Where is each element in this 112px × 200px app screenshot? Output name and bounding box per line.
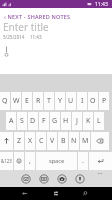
button[interactable]: L <box>94 112 104 130</box>
button[interactable]: Search <box>77 187 93 200</box>
button[interactable]: D <box>28 112 38 130</box>
staticText: M <box>82 136 89 146</box>
button[interactable]: X <box>25 132 35 150</box>
staticText: D <box>30 116 36 126</box>
button[interactable]: Bullet list <box>39 174 49 184</box>
staticText: L <box>97 116 101 126</box>
button[interactable]: ‹ NEXT - SHARED NOTES <box>0 12 112 20</box>
button[interactable]: F <box>39 112 49 130</box>
button[interactable]: Checklist <box>21 174 31 184</box>
button[interactable]: B <box>58 132 68 150</box>
button[interactable]: V <box>47 132 57 150</box>
button[interactable]: Q <box>0 92 10 110</box>
button[interactable]: G <box>50 112 60 130</box>
staticText: J <box>76 116 78 126</box>
button[interactable]: A <box>6 112 16 130</box>
staticText: , <box>29 156 31 166</box>
button[interactable]: T <box>44 92 54 110</box>
staticText: ‹ NEXT - SHARED NOTES <box>4 13 71 20</box>
button[interactable]: Start <box>48 187 64 200</box>
staticText: 11:43 <box>95 1 108 8</box>
staticText: N <box>71 136 77 146</box>
staticText: X <box>28 136 33 146</box>
button[interactable]: Backspace <box>91 132 109 150</box>
button[interactable]: N <box>69 132 79 150</box>
staticText: F <box>42 116 46 126</box>
button[interactable]: Y <box>55 92 65 110</box>
staticText: H <box>63 116 69 126</box>
button[interactable]: W <box>11 92 21 110</box>
staticText: K <box>86 116 91 126</box>
button[interactable]: O <box>88 92 98 110</box>
button[interactable]: Back <box>17 187 33 200</box>
button[interactable]: S <box>17 112 27 130</box>
staticText: space <box>49 157 65 165</box>
staticText: Z <box>17 136 22 146</box>
staticText: &123 <box>1 158 12 164</box>
button[interactable]: P <box>99 92 109 110</box>
button[interactable]: H <box>61 112 71 130</box>
button[interactable]: . <box>78 152 88 170</box>
staticText: U <box>68 96 74 106</box>
staticText: P <box>102 96 107 106</box>
button[interactable]: &123 <box>0 152 13 170</box>
button[interactable]: I <box>77 92 87 110</box>
button[interactable]: Enter <box>89 152 112 170</box>
staticText: 5/25/2014 <box>3 34 25 40</box>
button[interactable]: space <box>36 152 77 170</box>
button[interactable]: Shift <box>0 132 13 150</box>
button[interactable]: M <box>80 132 90 150</box>
button[interactable]: U <box>66 92 76 110</box>
staticText: Q <box>2 96 8 106</box>
button[interactable]: More options <box>92 170 112 187</box>
button[interactable]: Z <box>14 132 24 150</box>
button[interactable]: K <box>83 112 93 130</box>
staticText: O <box>90 96 96 106</box>
button[interactable]: J <box>72 112 82 130</box>
staticText: V <box>50 136 55 146</box>
staticText: R <box>36 96 41 106</box>
staticText: A <box>9 116 14 126</box>
button[interactable]: C <box>36 132 46 150</box>
staticText: I <box>81 96 84 106</box>
button[interactable]: Microphone <box>75 174 85 184</box>
staticText: C <box>39 136 44 146</box>
staticText: 11:43 <box>30 34 42 40</box>
staticText: G <box>52 116 58 126</box>
staticText: Enter title <box>3 20 49 34</box>
staticText: Y <box>58 96 62 106</box>
staticText: B <box>61 136 66 146</box>
staticText: T <box>47 96 51 106</box>
button[interactable]: Emoji <box>14 152 24 170</box>
staticText: S <box>20 116 24 126</box>
staticText: E <box>25 96 29 106</box>
button[interactable]: R <box>33 92 43 110</box>
button[interactable]: , <box>25 152 35 170</box>
staticText: W <box>13 96 20 106</box>
staticText: . <box>82 156 84 166</box>
button[interactable]: E <box>22 92 32 110</box>
button[interactable]: Camera <box>57 174 67 184</box>
